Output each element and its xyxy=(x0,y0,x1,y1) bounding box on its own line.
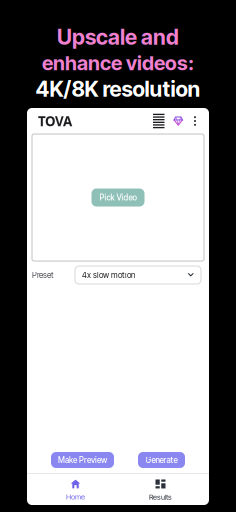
staticText: Home xyxy=(66,492,85,501)
button[interactable]: Home xyxy=(27,480,124,501)
staticText: enhance videos: xyxy=(42,51,194,75)
staticText: 4x slow motion xyxy=(82,270,135,280)
button[interactable]: Layers xyxy=(153,114,164,128)
button[interactable]: Make Preview xyxy=(51,452,114,468)
button[interactable]: More options xyxy=(194,116,196,126)
staticText: Preset xyxy=(32,270,54,280)
button[interactable]: Premium xyxy=(173,116,183,125)
staticText: Generate xyxy=(145,455,177,465)
button[interactable]: Generate xyxy=(138,452,185,468)
staticText: TOVA xyxy=(38,112,72,130)
staticText: Make Preview xyxy=(58,455,107,465)
staticText: Results xyxy=(149,492,172,501)
button[interactable]: 4x slow motion xyxy=(75,266,201,284)
staticText: Upscale and xyxy=(57,24,179,50)
staticText: 4K/8K resolution xyxy=(35,76,200,102)
button[interactable]: Results xyxy=(124,480,197,501)
button[interactable]: Pick Video xyxy=(91,188,144,206)
button[interactable]: TOVA xyxy=(38,112,72,130)
staticText: Pick Video xyxy=(99,193,136,202)
